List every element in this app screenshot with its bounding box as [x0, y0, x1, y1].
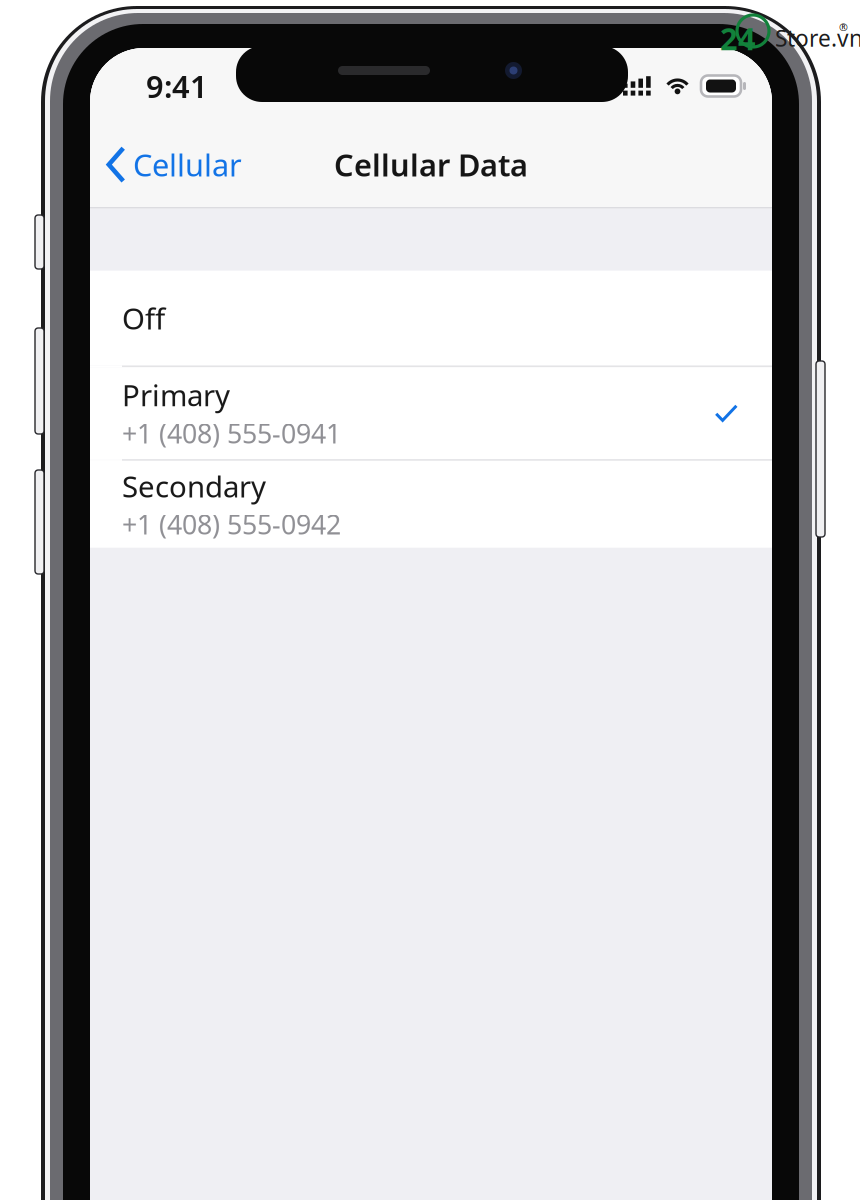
staticText: Primary [122, 375, 230, 414]
button[interactable]: Off [90, 271, 772, 366]
staticText: +1 (408) 555-0942 [122, 507, 341, 542]
staticText: Secondary [122, 467, 266, 506]
button[interactable]: Secondary [90, 461, 772, 548]
staticText: +1 (408) 555-0941 [122, 415, 341, 451]
staticText: Off [122, 299, 165, 338]
staticText: 24 [720, 18, 756, 59]
button[interactable]: Cellular [90, 122, 254, 207]
staticText: Cellular Data [334, 144, 528, 185]
button[interactable]: Primary [90, 367, 772, 459]
staticText: Store.vn [775, 23, 860, 53]
staticText: Cellular [133, 144, 242, 185]
staticText: 9:41 [146, 66, 208, 106]
staticText: ® [839, 20, 848, 34]
